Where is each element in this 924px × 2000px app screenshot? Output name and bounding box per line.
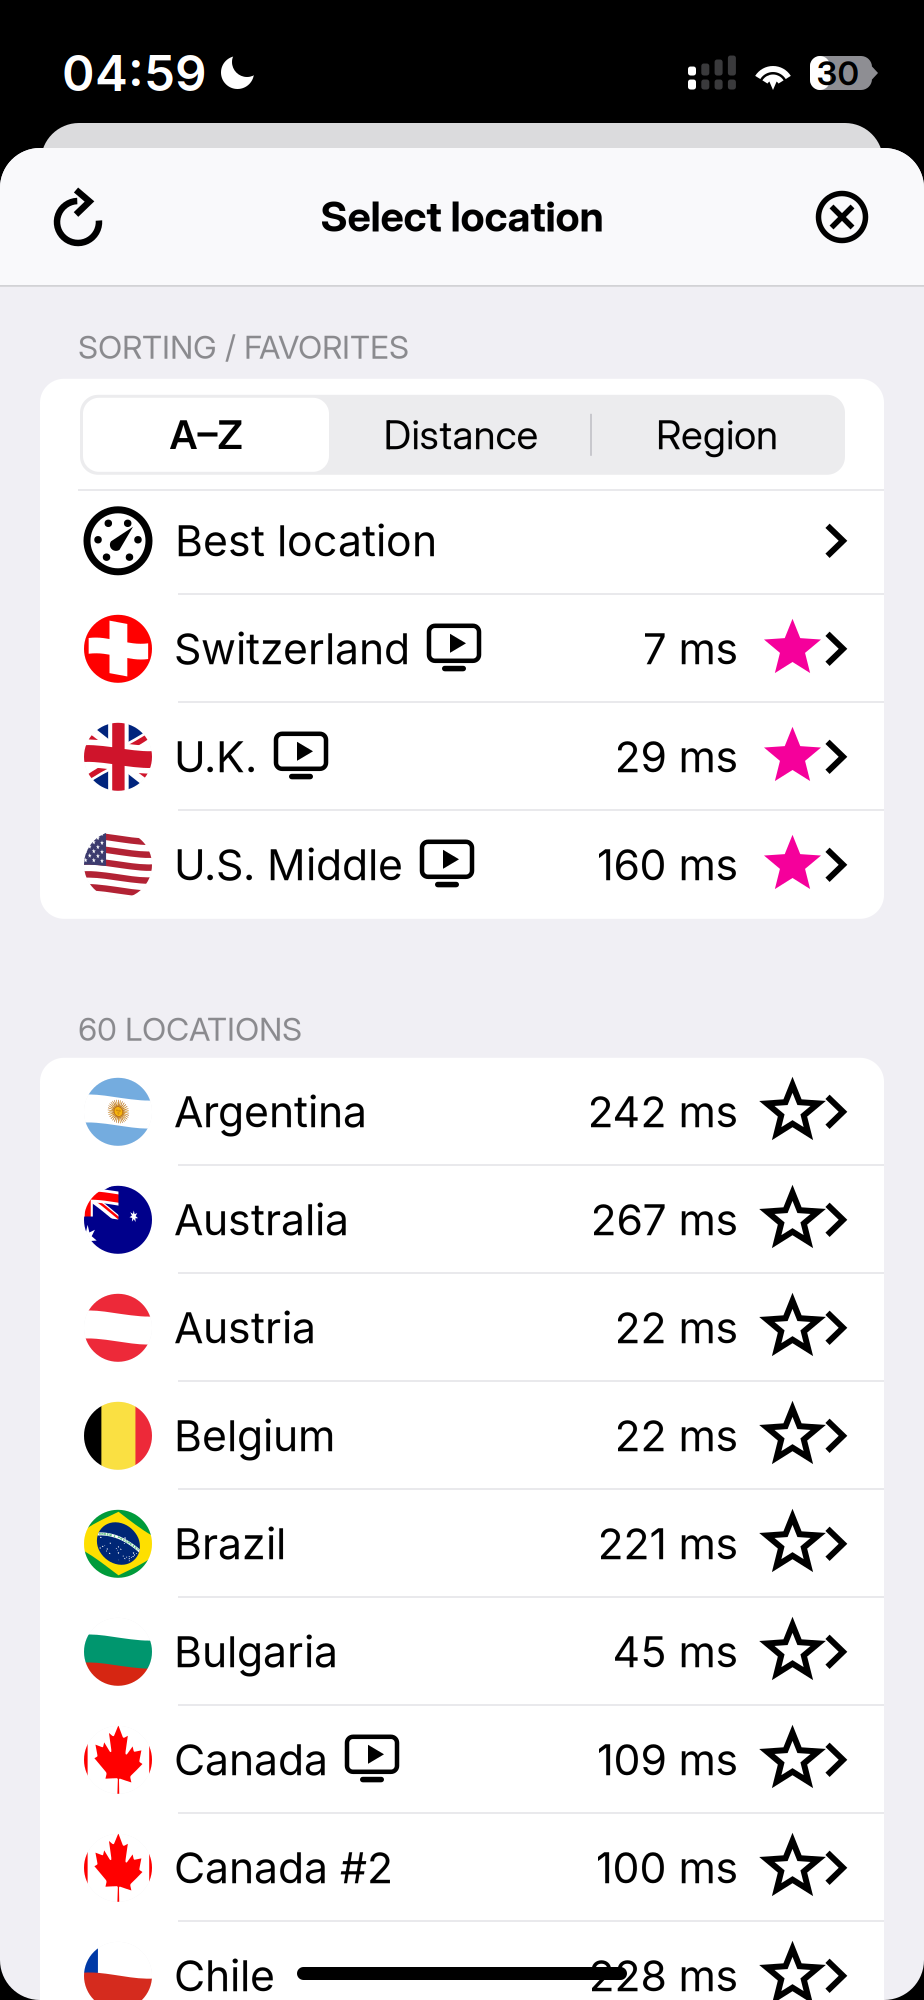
staticText: 30	[816, 53, 859, 93]
staticText: Brazil	[174, 1518, 286, 1570]
button[interactable]: Region	[592, 398, 842, 472]
staticText: 109 ms	[596, 1734, 738, 1786]
button[interactable]: 🇨🇱	[40, 1922, 884, 2000]
staticText: Argentina	[174, 1086, 367, 1138]
staticText: Bulgaria	[174, 1626, 338, 1678]
staticText: 🇨🇱	[51, 1913, 184, 2000]
button[interactable]: 🇧🇬	[40, 1598, 884, 1706]
staticText: Select location	[320, 191, 603, 241]
staticText: Chile	[174, 1950, 275, 2000]
staticText: 22 ms	[614, 1302, 738, 1354]
staticText: A–Z	[169, 411, 242, 459]
staticText: U.K.	[174, 731, 257, 783]
staticText: 267 ms	[590, 1194, 738, 1246]
staticText: U.S. Middle	[174, 839, 403, 891]
button[interactable]: 🇨🇭	[40, 595, 884, 703]
button[interactable]: 🇧🇪	[40, 1382, 884, 1490]
staticText: Region	[656, 411, 778, 459]
staticText: 221 ms	[597, 1518, 738, 1570]
staticText: 100 ms	[595, 1842, 738, 1894]
button[interactable]: Best location	[40, 487, 884, 595]
staticText: 60 LOCATIONS	[78, 1010, 302, 1048]
button[interactable]: Distance	[336, 398, 586, 472]
staticText: 228 ms	[588, 1950, 738, 2000]
staticText: 🇬🇧	[51, 694, 184, 819]
staticText: 7 ms	[642, 623, 738, 675]
button[interactable]: 🇦🇹	[40, 1274, 884, 1382]
staticText: 🇨🇭	[51, 586, 184, 711]
staticText: 🇦🇹	[51, 1265, 184, 1390]
button[interactable]: 🇦🇷	[40, 1058, 884, 1166]
button[interactable]: 🇧🇷	[40, 1490, 884, 1598]
button[interactable]: 🇨🇦	[40, 1814, 884, 1922]
staticText: 04:59	[62, 43, 207, 103]
staticText: Australia	[174, 1194, 349, 1246]
staticText: SORTING / FAVORITES	[78, 328, 409, 366]
staticText: Distance	[383, 411, 538, 459]
staticText: 29 ms	[614, 731, 738, 783]
staticText: Switzerland	[174, 623, 410, 675]
staticText: Austria	[174, 1302, 316, 1354]
staticText: 45 ms	[612, 1626, 738, 1678]
staticText: 🇦🇺	[51, 1157, 184, 1282]
staticText: 🇨🇦	[51, 1805, 184, 1930]
button[interactable]: Close	[796, 171, 888, 263]
staticText: 🇧🇷	[51, 1481, 184, 1606]
staticText: Canada #2	[174, 1842, 393, 1894]
staticText: 🇧🇬	[51, 1589, 184, 1714]
staticText: Best location	[175, 515, 437, 567]
staticText: 🇦🇷	[51, 1049, 184, 1174]
button[interactable]: Refresh	[32, 176, 124, 268]
staticText: 🇨🇦	[51, 1697, 184, 1822]
staticText: 🇧🇪	[51, 1373, 184, 1498]
staticText: 242 ms	[587, 1086, 738, 1138]
button[interactable]: 🇨🇦	[40, 1706, 884, 1814]
staticText: Belgium	[174, 1410, 335, 1462]
staticText: 🇺🇸	[51, 802, 184, 927]
button[interactable]: A–Z	[83, 398, 329, 472]
button[interactable]: 🇬🇧	[40, 703, 884, 811]
staticText: 22 ms	[614, 1410, 738, 1462]
staticText: 160 ms	[596, 839, 738, 891]
button[interactable]: 🇦🇺	[40, 1166, 884, 1274]
button[interactable]: 🇺🇸	[40, 811, 884, 919]
staticText: Canada	[174, 1734, 328, 1786]
